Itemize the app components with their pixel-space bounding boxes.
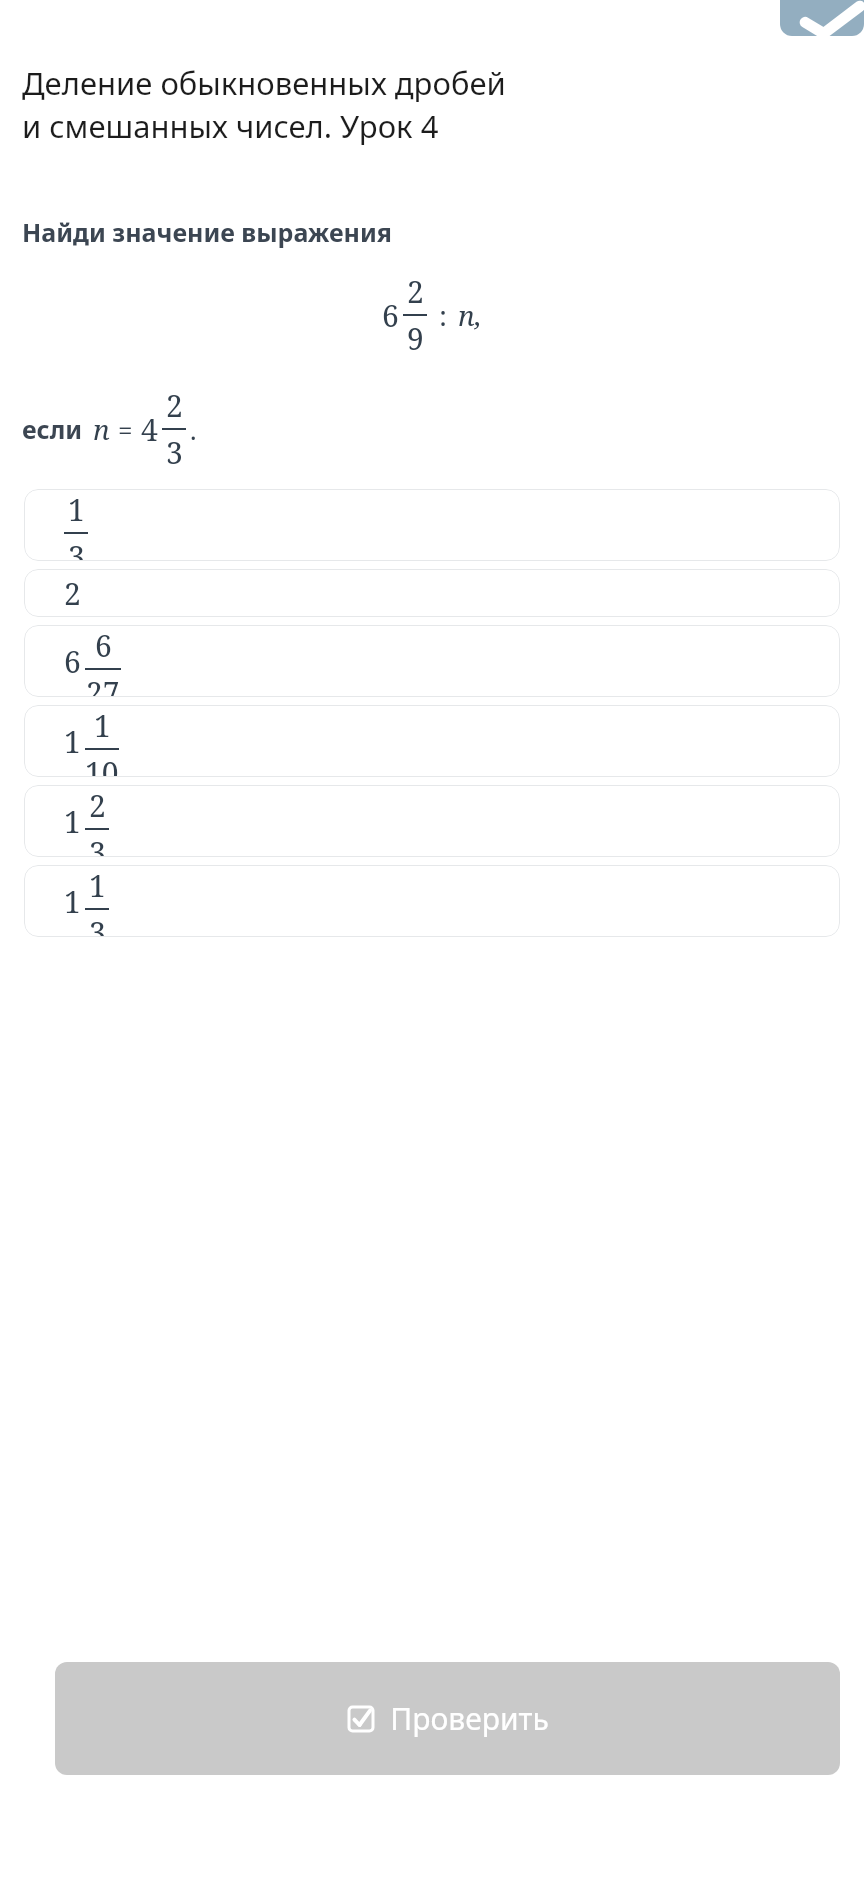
staticText: 2	[166, 385, 183, 426]
staticText: 27	[86, 672, 120, 697]
staticText: 2	[407, 271, 424, 312]
button[interactable]: Подсказка	[780, 0, 864, 36]
staticText: 1	[64, 881, 81, 922]
staticText: 1	[64, 801, 81, 842]
staticText: 2	[89, 785, 106, 826]
button[interactable]: 1	[24, 865, 840, 937]
staticText: Деление обыкновенных дробей и смешанных …	[22, 62, 506, 147]
staticText: 3	[89, 912, 106, 937]
staticText: 3	[166, 432, 183, 473]
staticText: 4	[141, 409, 158, 450]
staticText: Проверить	[390, 1698, 549, 1739]
staticText: 9	[407, 318, 424, 359]
staticText: 6	[382, 295, 399, 336]
staticText: 6	[95, 625, 112, 666]
button[interactable]: 6	[24, 625, 840, 697]
staticText: 3	[68, 536, 85, 561]
button[interactable]: 2	[24, 569, 840, 617]
button[interactable]: 1	[24, 489, 840, 561]
staticText: =	[118, 412, 133, 447]
staticText: .	[190, 412, 197, 447]
staticText: 6	[64, 641, 81, 682]
staticText: 1	[68, 489, 85, 530]
staticText: :	[439, 296, 448, 334]
button[interactable]: 1	[24, 705, 840, 777]
staticText: 2	[64, 573, 81, 614]
staticText: 1	[94, 705, 111, 746]
staticText: n,	[458, 296, 482, 334]
staticText: 1	[89, 865, 106, 906]
button[interactable]: Проверить	[55, 1662, 840, 1775]
staticText: Найди значение выражения	[22, 215, 392, 249]
staticText: если	[22, 412, 83, 446]
button[interactable]: 1	[24, 785, 840, 857]
staticText: 10	[85, 752, 119, 777]
staticText: n	[93, 410, 110, 448]
staticText: 1	[64, 721, 81, 762]
staticText: 3	[89, 832, 106, 857]
